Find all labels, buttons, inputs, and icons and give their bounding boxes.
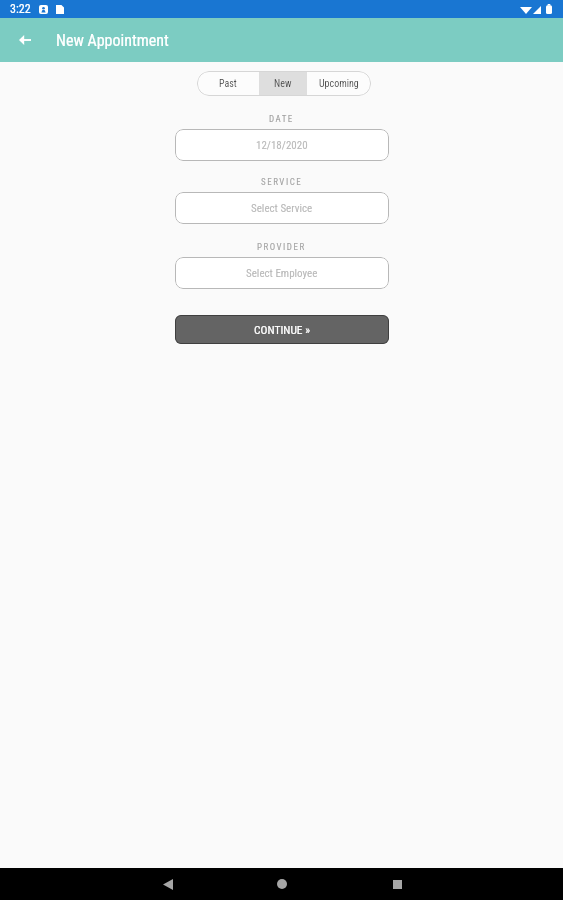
staticText: Select Employee bbox=[246, 267, 318, 280]
button[interactable]: Select Employee bbox=[175, 257, 389, 289]
button[interactable]: Back bbox=[11, 26, 39, 54]
button[interactable]: Recent apps bbox=[377, 868, 417, 900]
staticText: PROVIDER bbox=[257, 242, 306, 253]
button[interactable]: Home bbox=[262, 868, 302, 900]
staticText: 3:22 bbox=[10, 2, 31, 16]
button[interactable]: Past bbox=[197, 71, 259, 96]
staticText: SERVICE bbox=[261, 177, 303, 188]
staticText: DATE bbox=[269, 114, 294, 125]
staticText: New Appointment bbox=[56, 31, 169, 50]
staticText: 12/18/2020 bbox=[256, 139, 308, 152]
staticText: New bbox=[274, 78, 292, 90]
staticText: Upcoming bbox=[319, 78, 359, 90]
button[interactable]: Back bbox=[148, 868, 188, 900]
button[interactable]: Upcoming bbox=[307, 71, 371, 96]
button[interactable]: Select Service bbox=[175, 192, 389, 224]
button[interactable]: 12/18/2020 bbox=[175, 129, 389, 161]
staticText: Select Service bbox=[251, 202, 313, 215]
button[interactable]: CONTINUE » bbox=[175, 315, 389, 344]
button[interactable]: New bbox=[259, 71, 307, 96]
staticText: CONTINUE » bbox=[254, 323, 311, 336]
staticText: Past bbox=[219, 78, 237, 90]
